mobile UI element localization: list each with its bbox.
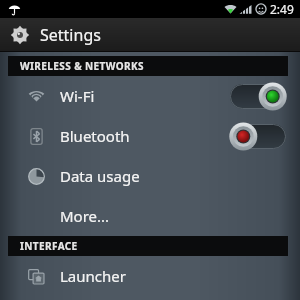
staticText: Bluetooth [60, 126, 130, 146]
staticText: Data usage [60, 166, 140, 186]
button[interactable]: Bluetooth [0, 116, 300, 156]
staticText: Wi-Fi [60, 86, 95, 106]
button[interactable]: Toggle off [230, 124, 286, 149]
button[interactable]: Launcher [0, 256, 300, 296]
staticText: WIRELESS & NETWORKS [20, 59, 144, 73]
button[interactable]: Data usage [0, 156, 300, 196]
staticText: Launcher [60, 266, 126, 286]
staticText: Settings [40, 24, 101, 46]
button[interactable]: Toggle on [230, 84, 286, 109]
staticText: 2:49 [270, 1, 294, 17]
button[interactable]: Wi-Fi [0, 76, 300, 116]
button[interactable]: More... [0, 196, 300, 236]
staticText: INTERFACE [20, 239, 78, 253]
staticText: More... [60, 206, 110, 226]
